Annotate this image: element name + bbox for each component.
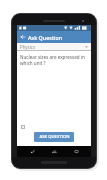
- button[interactable]: ASK QUESTION: [34, 132, 74, 142]
- button[interactable]: Home: [47, 146, 61, 157]
- staticText: Physics: [20, 44, 85, 50]
- staticText: ASK QUESTION: [39, 134, 70, 140]
- button[interactable]: Post anonymously: [20, 124, 26, 130]
- button[interactable]: Navigate up: [17, 31, 28, 43]
- button[interactable]: Physics: [17, 43, 91, 51]
- staticText: Nuclear sizes are expressed in which uni…: [20, 54, 88, 66]
- button[interactable]: Recent apps: [69, 146, 83, 157]
- staticText: Ask Question: [28, 34, 63, 41]
- button[interactable]: Back: [25, 146, 39, 157]
